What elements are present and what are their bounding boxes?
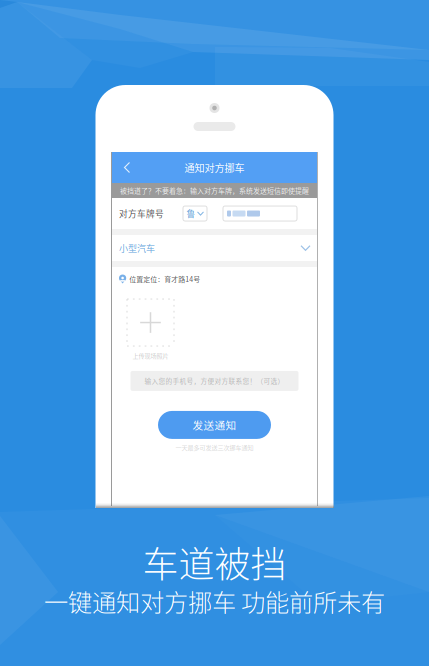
staticText: 一天最多可发送三次挪车通知 xyxy=(175,443,253,452)
staticText: 位置定位：育才路14号 xyxy=(129,274,200,284)
staticText: 发送通知 xyxy=(192,417,236,433)
staticText: 鲁 xyxy=(186,207,195,220)
staticText: 小型汽车 xyxy=(119,241,155,254)
staticText: 输入您的手机号，方便对方联系您！（可选） xyxy=(144,376,284,386)
staticText: 一键通知对方挪车 功能前所未有 xyxy=(44,583,385,618)
staticText: 上传现场照片 xyxy=(132,351,168,360)
button[interactable]: 发送通知 xyxy=(158,411,271,439)
staticText: 通知对方挪车 xyxy=(184,160,244,175)
staticText: 车道被挡 xyxy=(142,536,286,588)
button[interactable]: Back xyxy=(116,153,138,181)
staticText: 被挡道了？不要着急：输入对方车牌，系统发送短信即使提醒 xyxy=(120,185,309,195)
staticText: 对方车牌号 xyxy=(119,207,164,220)
